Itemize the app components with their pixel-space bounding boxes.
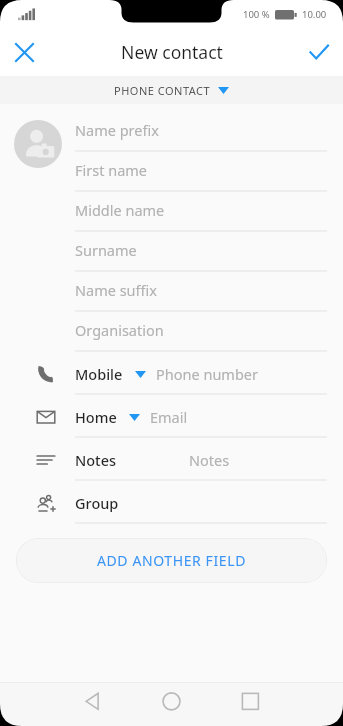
staticText: New contact xyxy=(121,40,223,64)
button[interactable]: Cancel xyxy=(0,28,48,76)
button[interactable]: Surname xyxy=(75,232,327,272)
staticText: Notes xyxy=(189,450,230,470)
staticText: ADD ANOTHER FIELD xyxy=(97,551,246,570)
staticText: 10.00 xyxy=(302,8,327,21)
staticText: Phone number xyxy=(156,364,258,384)
button[interactable]: Home xyxy=(148,682,196,726)
button[interactable]: ADD ANOTHER FIELD xyxy=(16,538,327,583)
button[interactable]: Recents xyxy=(223,682,271,726)
button[interactable]: Name suffix xyxy=(75,272,327,312)
staticText: Email xyxy=(150,407,188,427)
button[interactable]: Save xyxy=(295,28,343,76)
button[interactable]: Notes xyxy=(0,438,343,481)
staticText: Mobile xyxy=(75,364,123,384)
button[interactable]: Organisation xyxy=(75,312,327,352)
staticText: First name xyxy=(75,160,148,180)
button[interactable]: Home xyxy=(0,395,343,438)
button[interactable]: Middle name xyxy=(75,192,327,232)
button[interactable]: Group xyxy=(0,481,343,524)
button[interactable]: PHONE CONTACT xyxy=(0,76,343,104)
staticText: PHONE CONTACT xyxy=(114,83,211,98)
staticText: Notes xyxy=(75,450,117,470)
staticText: Organisation xyxy=(75,320,164,340)
staticText: Group xyxy=(75,493,119,513)
staticText: Surname xyxy=(75,240,137,260)
staticText: Name prefix xyxy=(75,120,159,140)
staticText: 100 % xyxy=(243,8,270,21)
button[interactable]: Name prefix xyxy=(75,112,327,152)
staticText: Middle name xyxy=(75,200,165,220)
staticText: Name suffix xyxy=(75,280,157,300)
button[interactable]: Mobile xyxy=(0,352,343,395)
staticText: Home xyxy=(75,407,117,427)
button[interactable]: Back xyxy=(72,682,120,726)
button[interactable]: First name xyxy=(75,152,327,192)
